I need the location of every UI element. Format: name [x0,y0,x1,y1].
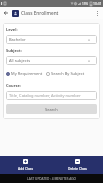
button[interactable]: More options [91,7,103,19]
button[interactable]: Search [6,104,97,114]
staticText: Subject: [6,48,22,53]
button[interactable]: Search By Subject [46,71,85,76]
staticText: 10:31 [93,1,102,6]
button[interactable]: My Requirement [6,71,43,76]
button[interactable]: Back [0,7,12,19]
button[interactable]: Title, Catalog number, Activity number [6,91,97,100]
staticText: LAST UPDATED : 4 MINUTES AGO [27,177,77,181]
staticText: My Requirement [11,71,43,76]
staticText: Delete Class [68,166,87,170]
staticText: Search [45,107,58,112]
button[interactable]: All subjects [6,56,97,65]
staticText: Bachelor [9,37,26,42]
staticText: Title, Catalog number, Activity number [9,93,81,98]
staticText: Level: [6,27,18,32]
staticText: Add Class [18,166,33,170]
staticText: Search By Subject [51,71,85,76]
button[interactable]: Add Class [0,156,51,170]
button[interactable]: Delete Class [51,156,103,170]
staticText: Course: [6,83,21,88]
button[interactable]: Bachelor [6,35,97,44]
staticText: 15% [82,2,89,6]
staticText: All subjects [9,58,31,63]
staticText: Class Enrollment [21,10,59,16]
